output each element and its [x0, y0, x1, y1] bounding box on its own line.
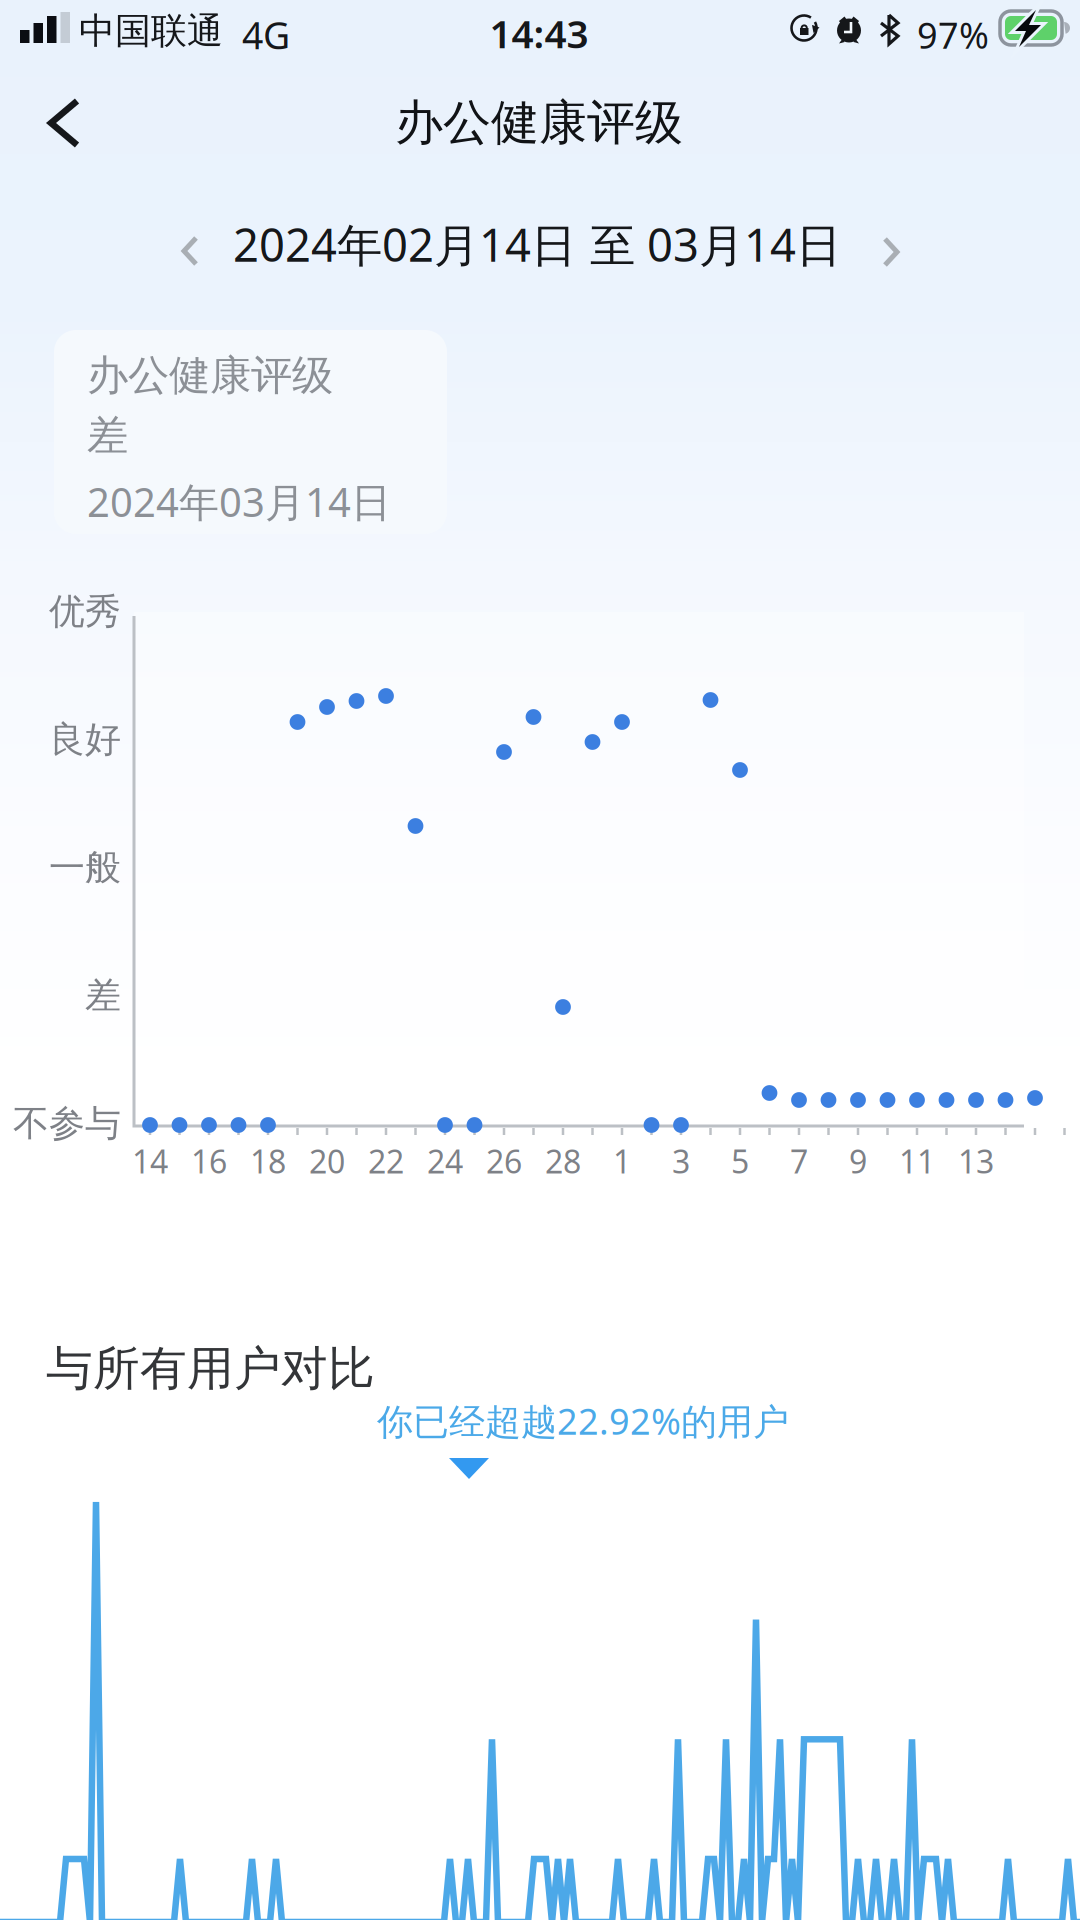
button[interactable]: Previous period [162, 219, 218, 283]
staticText: 一般 [49, 845, 121, 890]
staticText: 与所有用户对比 [46, 1340, 375, 1397]
staticText: 中国联通 [79, 9, 223, 53]
staticText: 2024年03月14日 [87, 475, 391, 528]
staticText: 24 [427, 1140, 463, 1182]
staticText: 5 [731, 1140, 749, 1182]
staticText: 1 [613, 1140, 631, 1182]
staticText: 11 [899, 1140, 935, 1182]
staticText: 22 [368, 1140, 404, 1182]
staticText: 不参与 [13, 1101, 121, 1146]
staticText: 差 [85, 973, 121, 1018]
staticText: 20 [309, 1140, 345, 1182]
staticText: 4G [242, 10, 290, 60]
staticText: 2024年02月14日 至 03月14日 [233, 214, 841, 274]
staticText: 你已经超越22.92%的用户 [377, 1397, 789, 1445]
staticText: 18 [250, 1140, 286, 1182]
staticText: 7 [790, 1140, 808, 1182]
staticText: 良好 [49, 717, 121, 762]
button[interactable]: Back [18, 77, 110, 169]
staticText: 差 [87, 410, 128, 461]
staticText: 26 [486, 1140, 522, 1182]
staticText: 3 [672, 1140, 690, 1182]
staticText: 13 [958, 1140, 994, 1182]
staticText: 97% [917, 11, 989, 59]
staticText: 办公健康评级 [87, 350, 333, 401]
staticText: 14:43 [489, 7, 588, 59]
staticText: 优秀 [49, 589, 121, 634]
button[interactable]: Next period [863, 220, 919, 284]
staticText: 办公健康评级 [395, 93, 683, 152]
staticText: 9 [849, 1140, 867, 1182]
staticText: 14 [132, 1140, 168, 1182]
staticText: 28 [545, 1140, 581, 1182]
staticText: 16 [191, 1140, 227, 1182]
